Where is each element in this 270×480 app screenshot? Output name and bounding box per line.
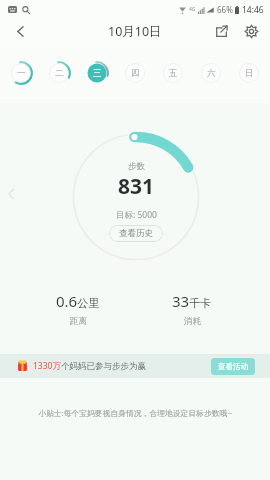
button[interactable]: 日: [234, 58, 264, 88]
button[interactable]: 五: [158, 58, 188, 88]
button[interactable]: 二: [44, 58, 74, 88]
staticText: 0.6公里: [56, 291, 100, 311]
staticText: 10月10日: [108, 23, 162, 40]
staticText: 三: [93, 68, 102, 79]
staticText: 步数: [128, 161, 145, 172]
button[interactable]: Share: [206, 16, 236, 46]
staticText: 二: [55, 68, 64, 79]
staticText: 日: [245, 68, 254, 79]
staticText: 831: [118, 172, 155, 201]
button[interactable]: Back: [3, 14, 37, 48]
staticText: 四: [131, 68, 140, 79]
staticText: 小贴士:每个宝妈要视自身情况，合理地设定目标步数哦~: [0, 408, 270, 419]
button[interactable]: Settings: [236, 16, 266, 46]
staticText: 六: [207, 68, 216, 79]
button[interactable]: 三: [82, 58, 112, 88]
staticText: 查看活动: [218, 362, 248, 371]
button[interactable]: 一: [6, 58, 36, 88]
staticText: 1330万个妈妈已参与步步为赢: [33, 360, 146, 372]
staticText: 14:46: [242, 4, 264, 16]
button[interactable]: 六: [196, 58, 226, 88]
staticText: 4G: [189, 6, 196, 13]
button[interactable]: 四: [120, 58, 150, 88]
staticText: 五: [169, 68, 178, 79]
staticText: 33千卡: [172, 291, 212, 311]
button[interactable]: 查看历史: [109, 225, 163, 242]
button[interactable]: 查看活动: [211, 358, 255, 375]
staticText: 距离: [70, 316, 87, 327]
staticText: 66%: [217, 4, 233, 15]
staticText: 消耗: [184, 316, 201, 327]
staticText: 一: [17, 68, 26, 79]
staticText: 查看历史: [119, 228, 153, 239]
staticText: 目标: 5000: [116, 209, 157, 221]
